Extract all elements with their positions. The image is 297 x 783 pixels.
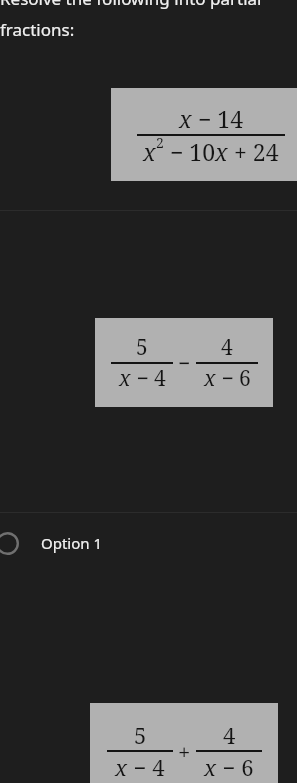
staticText: 4 bbox=[221, 333, 233, 362]
staticText: x bbox=[143, 136, 156, 167]
other: Select Option 1 bbox=[0, 525, 25, 561]
staticText: x bbox=[204, 752, 217, 782]
staticText: − 6 bbox=[216, 364, 251, 393]
staticText: x bbox=[204, 364, 216, 393]
staticText: 5 bbox=[134, 720, 147, 750]
staticText: x bbox=[115, 752, 128, 782]
staticText: − 4 bbox=[128, 752, 165, 782]
staticText: − bbox=[178, 349, 191, 378]
staticText: 4 bbox=[223, 720, 236, 750]
staticText: − 10 bbox=[164, 136, 215, 167]
staticText: Resolve the following into partial fract… bbox=[0, 0, 291, 41]
staticText: Option 1 bbox=[41, 533, 103, 553]
staticText: − 4 bbox=[131, 364, 166, 393]
staticText: x bbox=[179, 103, 192, 134]
button[interactable]: Select Option 1 bbox=[0, 519, 297, 567]
staticText: + bbox=[178, 736, 191, 766]
staticText: 5 bbox=[136, 333, 148, 362]
staticText: x bbox=[119, 364, 131, 393]
staticText: x bbox=[215, 136, 228, 167]
staticText: − 14 bbox=[192, 103, 243, 134]
staticText: − 6 bbox=[217, 752, 254, 782]
staticText: 2 bbox=[156, 133, 164, 152]
staticText: + 24 bbox=[228, 136, 279, 167]
